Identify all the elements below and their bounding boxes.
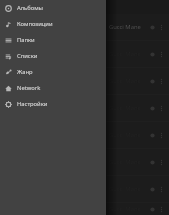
- other: More options: [158, 105, 165, 112]
- other: More options: [158, 78, 165, 85]
- other: More options: [158, 132, 165, 139]
- staticText: Gucci Mane: [109, 23, 141, 31]
- staticText: Настройки: [17, 100, 48, 108]
- other: Favorite: [149, 206, 156, 213]
- button[interactable]: Композиции: [0, 16, 106, 32]
- staticText: Gucci Mane: [109, 205, 141, 213]
- button[interactable]: Gucci Mane: [0, 41, 169, 67]
- staticText: Gucci Mane: [109, 158, 141, 166]
- button[interactable]: Gucci Mane: [0, 122, 169, 148]
- staticText: Gucci Mane: [109, 104, 141, 112]
- button[interactable]: Gucci Mane: [0, 203, 169, 215]
- button[interactable]: Gucci Mane: [0, 149, 169, 175]
- other: Favorite: [149, 186, 156, 193]
- button[interactable]: Настройки: [0, 96, 106, 112]
- other: More options: [158, 24, 165, 31]
- staticText: Альбомы: [17, 4, 44, 12]
- button[interactable]: Папки: [0, 32, 106, 48]
- staticText: Жанр: [17, 68, 33, 76]
- other: Favorite: [149, 132, 156, 139]
- button[interactable]: Списки: [0, 48, 106, 64]
- staticText: Gucci Mane: [109, 50, 141, 58]
- other: Favorite: [149, 24, 156, 31]
- staticText: Композиции: [17, 20, 53, 28]
- other: More options: [158, 51, 165, 58]
- staticText: Gucci Mane: [109, 185, 141, 193]
- other: Favorite: [149, 51, 156, 58]
- button[interactable]: Network: [0, 80, 106, 96]
- staticText: Network: [17, 84, 41, 92]
- staticText: Списки: [17, 52, 38, 60]
- button[interactable]: Жанр: [0, 64, 106, 80]
- other: More options: [158, 206, 165, 213]
- button[interactable]: Gucci Mane: [0, 14, 169, 40]
- other: Favorite: [149, 78, 156, 85]
- staticText: Gucci Mane: [109, 77, 141, 85]
- button[interactable]: Альбомы: [0, 0, 106, 16]
- staticText: Gucci Mane: [109, 131, 141, 139]
- button[interactable]: Gucci Mane: [0, 95, 169, 121]
- staticText: Папки: [17, 36, 35, 44]
- other: Favorite: [149, 159, 156, 166]
- other: More options: [158, 186, 165, 193]
- other: More options: [158, 159, 165, 166]
- button[interactable]: Gucci Mane: [0, 176, 169, 202]
- button[interactable]: Gucci Mane: [0, 68, 169, 94]
- other: Favorite: [149, 105, 156, 112]
